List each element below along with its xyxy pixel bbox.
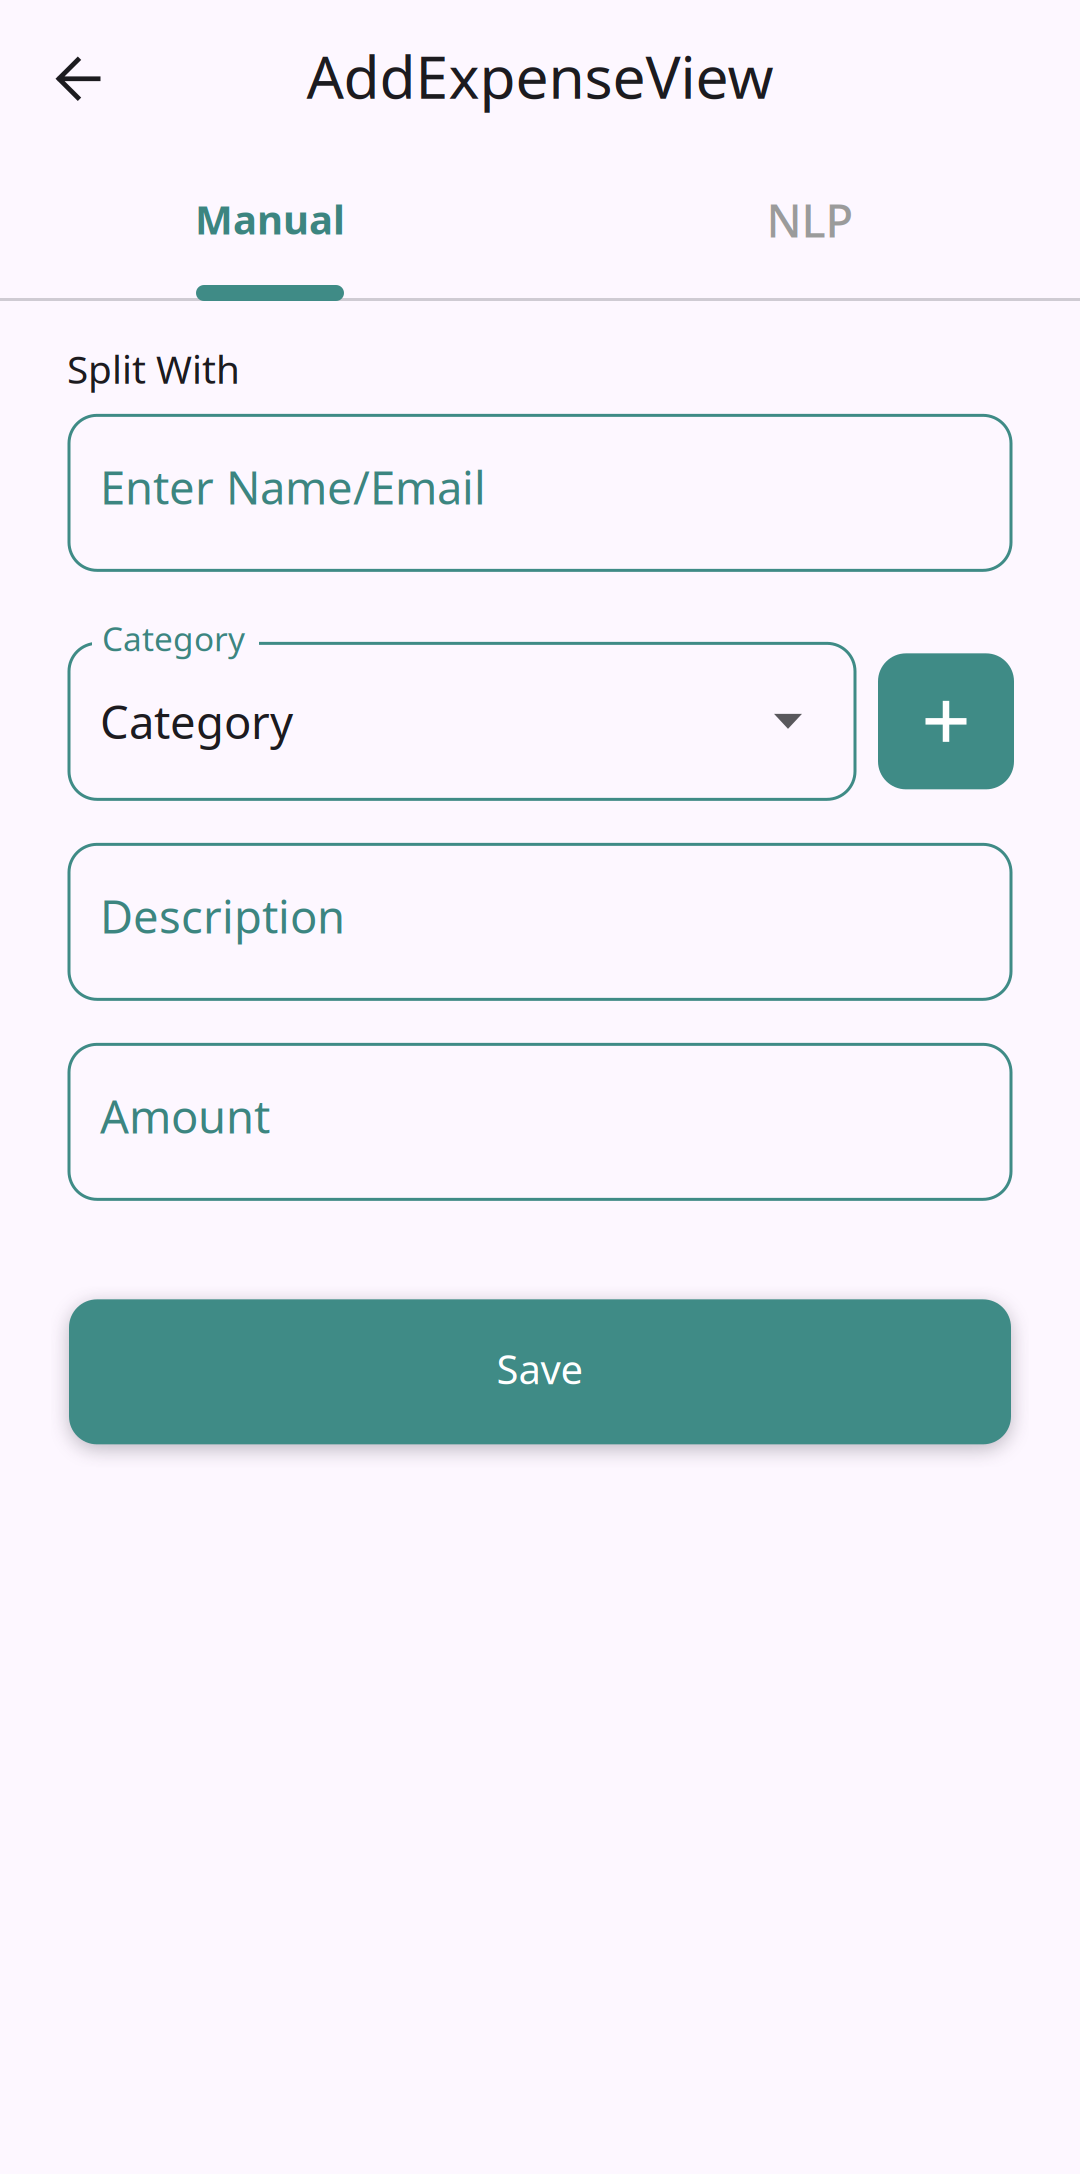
staticText: Description xyxy=(100,886,345,946)
staticText: Save xyxy=(496,1342,583,1395)
staticText: Amount xyxy=(100,1086,270,1146)
staticText: NLP xyxy=(766,190,853,250)
button[interactable]: Amount xyxy=(69,1044,1011,1199)
button[interactable]: Add category xyxy=(878,653,1014,789)
button[interactable]: Enter Name/Email xyxy=(69,415,1011,570)
staticText: Category xyxy=(100,691,293,751)
staticText: Category xyxy=(102,616,245,660)
staticText: Split With xyxy=(67,343,240,394)
button[interactable]: Manual xyxy=(0,155,540,301)
button[interactable]: Back xyxy=(0,12,128,140)
button[interactable]: NLP xyxy=(540,155,1080,301)
staticText: Enter Name/Email xyxy=(100,457,486,517)
staticText: Manual xyxy=(195,192,345,245)
button[interactable]: Description xyxy=(69,844,1011,999)
button[interactable]: Save xyxy=(69,1299,1011,1444)
staticText: AddExpenseView xyxy=(306,37,773,115)
button[interactable]: Category xyxy=(69,643,855,799)
